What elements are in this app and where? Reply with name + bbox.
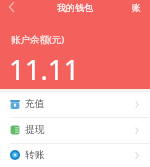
button[interactable]: 账 <box>123 0 150 14</box>
staticText: 账 <box>132 2 141 13</box>
button[interactable]: Back <box>0 0 27 14</box>
button[interactable]: 转账 <box>0 144 150 167</box>
staticText: 我的钱包 <box>57 2 93 13</box>
staticText: 转账 <box>25 149 45 161</box>
staticText: 账户余额(元) <box>11 33 65 46</box>
staticText: 提现 <box>25 124 45 136</box>
staticText: 充值 <box>25 98 45 110</box>
button[interactable]: 提现 <box>0 118 150 143</box>
button[interactable]: 充值 <box>0 92 150 117</box>
staticText: 11.11 <box>9 51 80 88</box>
